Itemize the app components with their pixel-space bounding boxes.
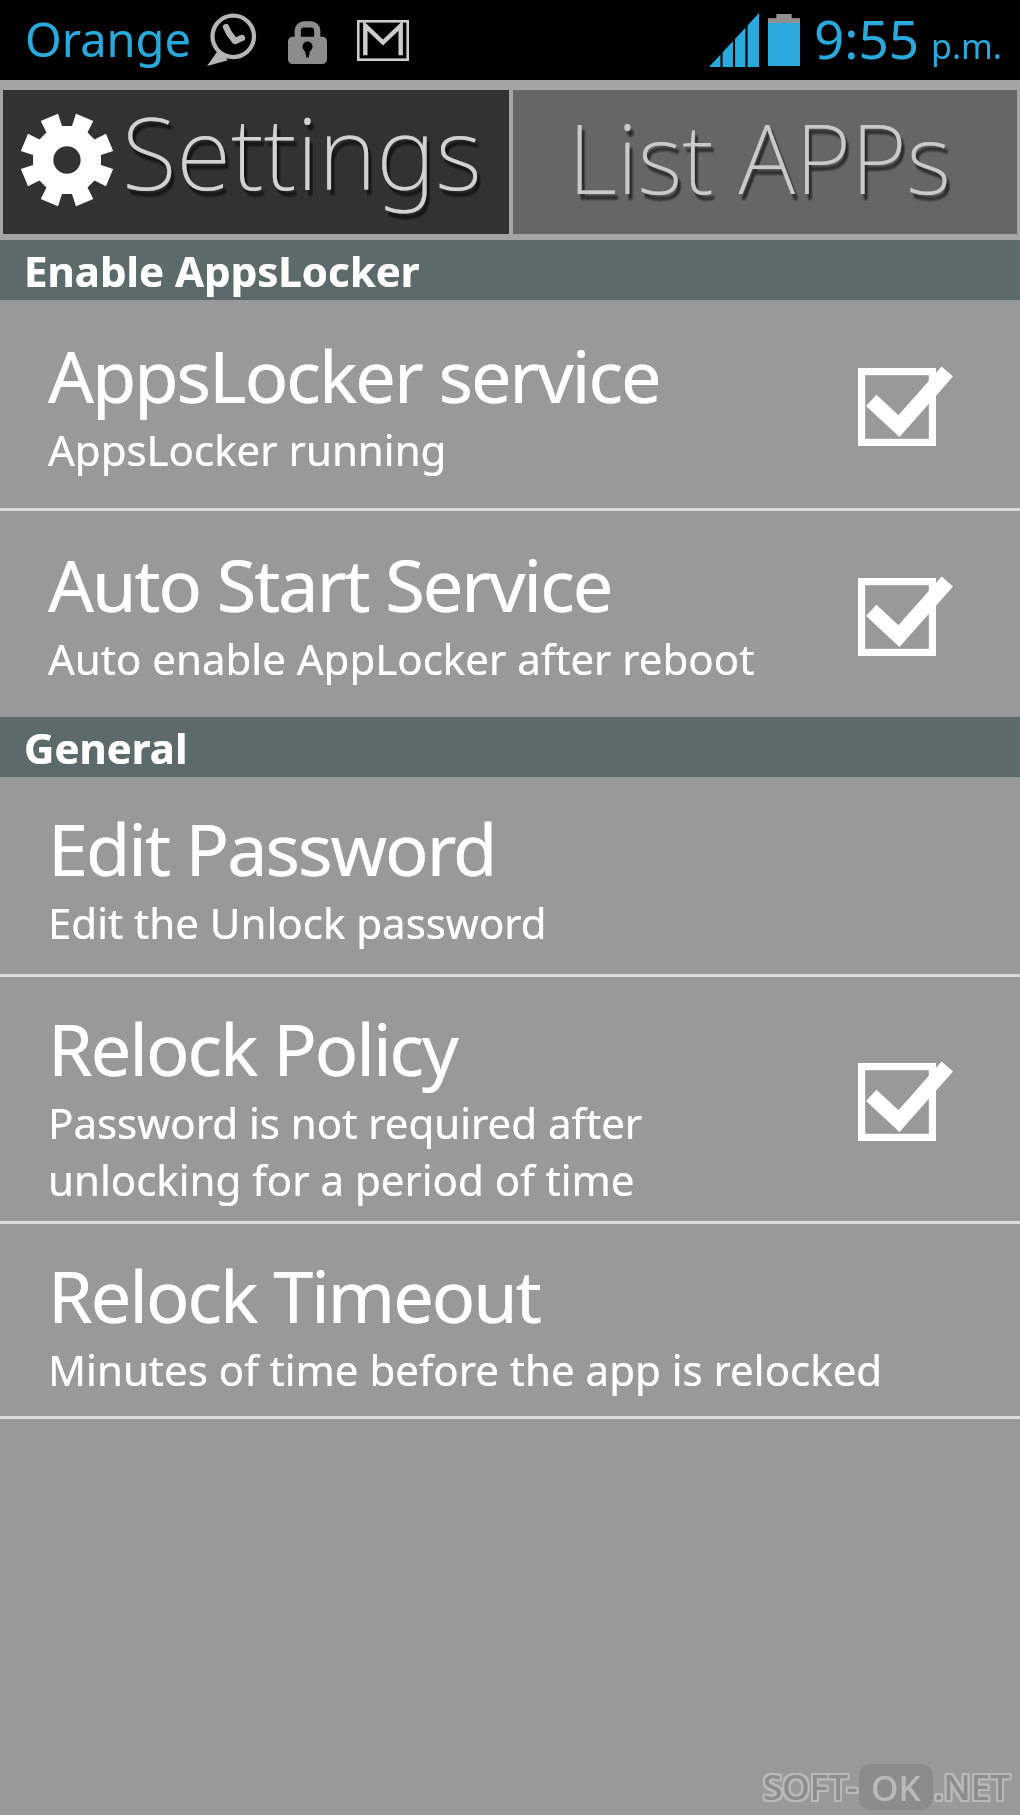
- button[interactable]: AppsLocker service: [0, 300, 1020, 508]
- staticText: Settings: [126, 87, 486, 223]
- other: Battery: [768, 14, 800, 66]
- staticText: Relock Timeout: [48, 1246, 540, 1344]
- staticText: AppsLocker running: [48, 421, 447, 478]
- staticText: Settings: [126, 89, 486, 225]
- staticText: Settings: [124, 87, 484, 223]
- staticText: .NET: [936, 1765, 1012, 1813]
- staticText: Edit the Unlock password: [48, 894, 547, 951]
- staticText: List APPs: [572, 97, 955, 228]
- staticText: .NET: [936, 1761, 1012, 1809]
- staticText: Relock Policy: [48, 999, 457, 1097]
- staticText: Orange: [25, 7, 192, 71]
- staticText: Minutes of time before the app is relock…: [48, 1341, 883, 1398]
- staticText: .NET: [936, 1763, 1012, 1811]
- button[interactable]: Toggle Auto Start Service: [858, 578, 949, 656]
- button[interactable]: List APPs: [513, 90, 1017, 234]
- staticText: List APPs: [571, 98, 954, 229]
- staticText: List APPs: [568, 91, 951, 222]
- staticText: SOFT-: [761, 1763, 856, 1811]
- staticText: .NET: [934, 1765, 1010, 1813]
- staticText: SOFT-: [761, 1765, 856, 1813]
- button[interactable]: Settings: [3, 90, 509, 234]
- staticText: .NET: [932, 1765, 1008, 1813]
- staticText: List APPs: [570, 95, 953, 226]
- staticText: Edit Password: [48, 799, 496, 897]
- staticText: Settings: [124, 89, 484, 225]
- staticText: SOFT-: [765, 1761, 860, 1809]
- staticText: OK: [871, 1764, 921, 1810]
- staticText: SOFT-: [763, 1761, 858, 1809]
- staticText: p.m.: [931, 23, 1002, 69]
- button[interactable]: Auto Start Service: [0, 511, 1020, 717]
- staticText: SOFT-: [763, 1763, 858, 1811]
- staticText: .NET: [934, 1763, 1010, 1811]
- staticText: List APPs: [571, 96, 954, 227]
- staticText: SOFT-: [765, 1765, 860, 1813]
- staticText: AppsLocker service: [48, 326, 660, 424]
- other: Lock: [288, 17, 327, 64]
- other: Gmail: [357, 20, 409, 61]
- staticText: Enable AppsLocker: [24, 242, 420, 299]
- staticText: .NET: [932, 1761, 1008, 1809]
- staticText: Settings: [125, 90, 485, 226]
- staticText: List APPs: [570, 97, 953, 228]
- staticText: unlocking for a period of time: [48, 1151, 635, 1208]
- button[interactable]: Toggle AppsLocker service: [858, 368, 949, 446]
- staticText: Password is not required after: [48, 1094, 643, 1151]
- other: Settings: [20, 112, 114, 208]
- staticText: .NET: [934, 1761, 1010, 1809]
- staticText: Settings: [122, 83, 482, 219]
- other: WhatsApp: [206, 14, 256, 66]
- staticText: List APPs: [572, 95, 955, 226]
- other: Signal: [709, 13, 759, 67]
- button[interactable]: Relock Policy: [0, 977, 1020, 1221]
- staticText: Auto Start Service: [48, 535, 612, 633]
- staticText: 9:55: [814, 2, 920, 74]
- staticText: SOFT-: [761, 1761, 856, 1809]
- button[interactable]: Toggle Relock Policy: [858, 1063, 949, 1141]
- staticText: General: [24, 719, 188, 776]
- staticText: Settings: [125, 88, 485, 224]
- button[interactable]: Edit Password: [0, 777, 1020, 974]
- button[interactable]: Relock Timeout: [0, 1224, 1020, 1416]
- staticText: Auto enable AppLocker after reboot: [48, 630, 755, 687]
- staticText: .NET: [932, 1763, 1008, 1811]
- staticText: SOFT-: [765, 1763, 860, 1811]
- staticText: SOFT-: [763, 1765, 858, 1813]
